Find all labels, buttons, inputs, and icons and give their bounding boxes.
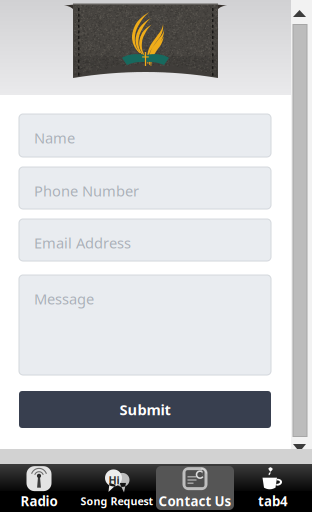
button[interactable]: Hi	[78, 466, 156, 510]
staticText: Radio	[20, 492, 57, 510]
button[interactable]: Phone Number	[19, 167, 271, 209]
staticText: Message	[34, 289, 94, 308]
staticText: Email Address	[34, 233, 131, 252]
button[interactable]: Submit	[19, 391, 271, 428]
staticText: Submit	[119, 400, 170, 419]
button[interactable]: Email Address	[19, 219, 271, 261]
button[interactable]: tab4	[234, 466, 312, 510]
staticText: Song Request	[80, 494, 153, 508]
staticText: Hi	[108, 473, 119, 487]
staticText: Phone Number	[34, 181, 139, 200]
staticText: Contact Us	[158, 492, 231, 510]
staticText: Name	[34, 128, 75, 147]
button[interactable]: Radio	[0, 466, 78, 510]
button[interactable]: Name	[19, 114, 271, 157]
button[interactable]: Contact Us	[156, 466, 234, 510]
button[interactable]: Message	[19, 275, 271, 375]
staticText: tab4	[258, 492, 288, 510]
